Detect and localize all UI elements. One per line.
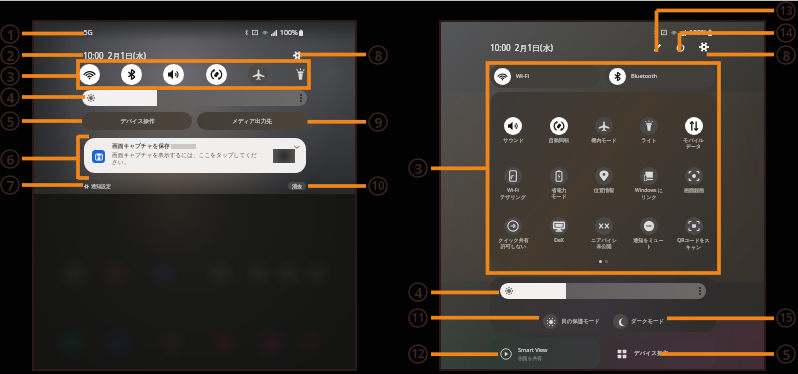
staticText: 10 bbox=[371, 178, 385, 194]
staticText: QRコードをス キャン bbox=[677, 237, 710, 250]
staticText: 15 bbox=[779, 310, 793, 326]
staticText: 消去 bbox=[292, 183, 302, 189]
staticText: 画面キャプチャを保存 bbox=[112, 143, 170, 150]
staticText: 10:00 2月1日(水) bbox=[83, 50, 146, 61]
button[interactable]: 消去 bbox=[288, 182, 306, 190]
staticText: デバイス操作 bbox=[634, 350, 669, 357]
staticText: 11 bbox=[411, 310, 425, 326]
staticText: 3 bbox=[414, 159, 423, 178]
button[interactable]: Wi-Fi bbox=[79, 64, 100, 85]
button[interactable]: Smart View bbox=[490, 338, 600, 369]
staticText: 4 bbox=[414, 283, 423, 302]
button[interactable]: サウンド bbox=[490, 117, 536, 143]
button[interactable]: Windows に リンク bbox=[626, 167, 671, 200]
staticText: 画面を共有 bbox=[518, 355, 543, 361]
button[interactable]: Bluetooth bbox=[605, 64, 716, 88]
button[interactable]: DeX bbox=[536, 217, 581, 244]
button[interactable]: デバイス操作 bbox=[82, 112, 192, 130]
staticText: 画面録画 bbox=[684, 187, 704, 193]
button[interactable]: デバイス操作 bbox=[606, 338, 716, 369]
button[interactable]: ライト bbox=[626, 117, 671, 143]
button[interactable]: Brightness bbox=[500, 283, 706, 299]
button[interactable]: 目の保護モード bbox=[543, 314, 600, 329]
staticText: 8 bbox=[374, 46, 383, 65]
button[interactable]: Wi-Fi テザリング bbox=[490, 167, 536, 200]
button[interactable]: 省電力 モード bbox=[536, 167, 581, 199]
staticText: 100% bbox=[280, 28, 298, 36]
staticText: メディア出力先 bbox=[232, 118, 272, 125]
staticText: 14 bbox=[779, 25, 793, 41]
staticText: Wi-Fi bbox=[516, 72, 529, 80]
button[interactable]: Settings bbox=[293, 51, 302, 60]
staticText: 5 bbox=[6, 112, 15, 131]
button[interactable]: Wi-Fi bbox=[490, 64, 600, 88]
staticText: 12 bbox=[411, 346, 425, 362]
staticText: 通知設定 bbox=[91, 183, 111, 189]
button[interactable]: Sound bbox=[163, 64, 184, 85]
staticText: 1 bbox=[6, 25, 15, 44]
button[interactable]: 位置情報 bbox=[581, 167, 626, 193]
staticText: 省電力 モード bbox=[551, 187, 567, 199]
staticText: 機内モード bbox=[591, 137, 617, 143]
staticText: 画面キャプチャを表示するには、ここをタップしてくだ bbox=[112, 152, 257, 159]
staticText: 5G bbox=[83, 28, 93, 36]
button[interactable]: Brightness bbox=[82, 90, 307, 106]
staticText: 位置情報 bbox=[594, 187, 614, 193]
button[interactable]: 通知設定 bbox=[84, 183, 111, 189]
staticText: 100% bbox=[689, 28, 707, 36]
staticText: 5 bbox=[782, 345, 791, 364]
staticText: 4 bbox=[6, 88, 15, 107]
staticText: 6 bbox=[6, 150, 15, 169]
button[interactable]: Edit quick settings bbox=[653, 43, 662, 52]
staticText: モバイル データ bbox=[683, 137, 704, 149]
staticText: Smart View bbox=[518, 346, 548, 354]
staticText: Wi-Fi テザリング bbox=[500, 187, 526, 200]
staticText: 8 bbox=[782, 46, 791, 65]
button[interactable]: 画面キャプチャを保存 bbox=[84, 138, 306, 173]
staticText: サウンド bbox=[503, 137, 524, 143]
staticText: Windows に リンク bbox=[635, 187, 663, 200]
button[interactable]: モバイル データ bbox=[671, 117, 716, 149]
button[interactable]: Flashlight bbox=[290, 64, 311, 85]
button[interactable]: ニアバイシ 未公開 bbox=[581, 217, 626, 249]
staticText: デバイス操作 bbox=[120, 118, 155, 125]
button[interactable]: Power bbox=[676, 43, 685, 52]
button[interactable]: 画面録画 bbox=[671, 167, 716, 193]
button[interactable]: Auto rotate bbox=[206, 64, 227, 85]
button[interactable]: Airplane mode bbox=[248, 64, 269, 85]
button[interactable]: ダークモード bbox=[613, 314, 664, 329]
staticText: さい。 bbox=[112, 159, 130, 166]
staticText: DeX bbox=[554, 237, 564, 244]
button[interactable]: 通知をミュー ト bbox=[626, 217, 671, 249]
staticText: 10:00 2月1日(水) bbox=[490, 42, 553, 53]
staticText: 3 bbox=[6, 67, 15, 86]
staticText: 自動回転 bbox=[549, 137, 569, 143]
button[interactable]: 機内モード bbox=[581, 117, 626, 143]
button[interactable]: Settings bbox=[699, 42, 709, 52]
button[interactable]: QRコードをス キャン bbox=[671, 217, 716, 250]
staticText: Bluetooth bbox=[631, 72, 657, 80]
button[interactable]: 自動回転 bbox=[536, 117, 581, 143]
staticText: 2 bbox=[6, 46, 15, 65]
staticText: 目の保護モード bbox=[561, 318, 600, 325]
staticText: クイック共有 許可しない bbox=[498, 237, 529, 249]
staticText: ニアバイシ 未公開 bbox=[591, 237, 617, 249]
button[interactable]: クイック共有 許可しない bbox=[490, 217, 536, 249]
staticText: ダークモード bbox=[631, 318, 664, 325]
staticText: 7 bbox=[6, 176, 15, 195]
button[interactable]: Bluetooth bbox=[121, 64, 142, 85]
staticText: 13 bbox=[779, 3, 793, 19]
staticText: 9 bbox=[374, 113, 383, 132]
staticText: ライト bbox=[641, 137, 657, 143]
staticText: 通知をミュー ト bbox=[633, 237, 664, 249]
button[interactable]: メディア出力先 bbox=[197, 112, 307, 130]
button[interactable]: Expand bbox=[293, 143, 301, 151]
